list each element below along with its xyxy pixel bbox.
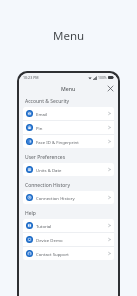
staticText: User Preferences — [25, 154, 66, 161]
staticText: Face ID & Fingerprint — [36, 139, 79, 145]
staticText: Email — [36, 111, 48, 117]
staticText: Pin — [36, 125, 43, 131]
staticText: 100% — [98, 75, 107, 80]
button[interactable]: Units & Date — [23, 163, 114, 176]
staticText: Contact Support — [36, 251, 69, 257]
button[interactable]: Close — [105, 83, 116, 94]
button[interactable]: Connection History — [23, 191, 114, 204]
button[interactable]: Tutorial — [23, 219, 114, 232]
button[interactable]: Device Demo — [23, 233, 114, 246]
staticText: 10:23 PM — [23, 75, 39, 80]
staticText: Units & Date — [36, 167, 62, 173]
staticText: Menu — [61, 85, 76, 92]
staticText: Help — [25, 210, 36, 217]
staticText: Connection History — [25, 182, 70, 189]
button[interactable]: Face ID & Fingerprint — [23, 135, 114, 148]
staticText: Tutorial — [36, 223, 52, 229]
button[interactable]: Pin — [23, 121, 114, 134]
button[interactable]: Contact Support — [23, 247, 114, 260]
staticText: Account & Security — [25, 98, 70, 105]
staticText: Menu — [53, 28, 85, 44]
staticText: Connection History — [36, 195, 75, 201]
button[interactable]: Email — [23, 107, 114, 120]
staticText: Device Demo — [36, 237, 63, 243]
